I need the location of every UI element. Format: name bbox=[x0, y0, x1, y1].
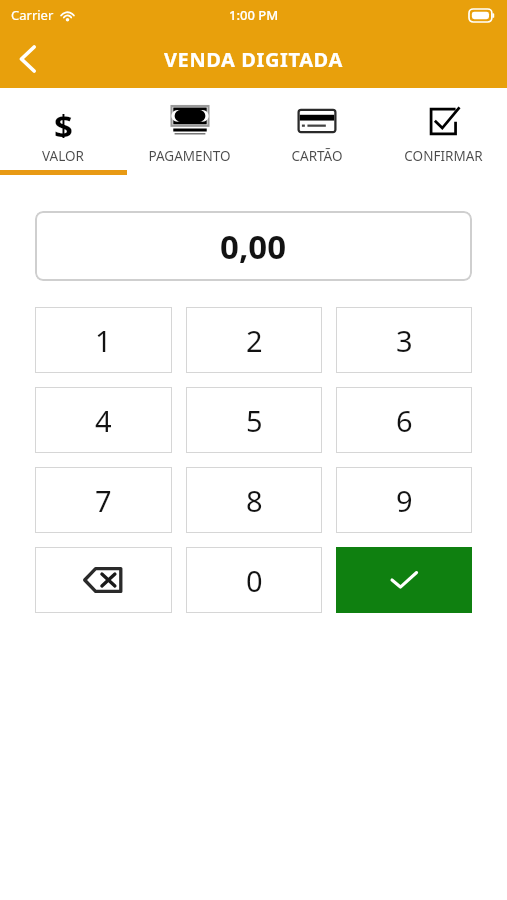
button[interactable]: 2 bbox=[186, 307, 322, 373]
staticText: 8 bbox=[246, 481, 263, 520]
staticText: VALOR bbox=[42, 147, 84, 165]
staticText: 6 bbox=[396, 401, 413, 440]
button[interactable]: 1 bbox=[35, 307, 172, 373]
button[interactable]: 6 bbox=[336, 387, 472, 453]
staticText: VENDA DIGITADA bbox=[164, 46, 343, 73]
button[interactable]: 4 bbox=[35, 387, 172, 453]
button[interactable]: PAGAMENTO bbox=[126, 88, 253, 175]
staticText: 1 bbox=[95, 321, 112, 360]
staticText: CONFIRMAR bbox=[404, 147, 483, 165]
staticText: CARTÃO bbox=[291, 147, 343, 165]
staticText: 0 bbox=[246, 561, 263, 600]
staticText: 5 bbox=[246, 401, 263, 440]
staticText: PAGAMENTO bbox=[148, 147, 231, 165]
button[interactable]: 0 bbox=[186, 547, 322, 613]
staticText: 0,00 bbox=[220, 224, 287, 269]
button[interactable]: Backspace bbox=[35, 547, 172, 613]
staticText: 2 bbox=[246, 321, 263, 360]
staticText: Carrier bbox=[11, 6, 54, 24]
button[interactable]: $ bbox=[0, 88, 126, 175]
button[interactable]: CONFIRMAR bbox=[380, 88, 507, 175]
button[interactable]: 3 bbox=[336, 307, 472, 373]
button[interactable]: Back bbox=[0, 31, 56, 87]
button[interactable]: Confirm bbox=[336, 547, 472, 613]
button[interactable]: 0,00 bbox=[35, 211, 472, 281]
staticText: 3 bbox=[396, 321, 413, 360]
button[interactable]: 9 bbox=[336, 467, 472, 533]
button[interactable]: 5 bbox=[186, 387, 322, 453]
button[interactable]: CARTÃO bbox=[253, 88, 380, 175]
staticText: $ bbox=[54, 104, 73, 138]
button[interactable]: 8 bbox=[186, 467, 322, 533]
staticText: 7 bbox=[95, 481, 112, 520]
button[interactable]: 7 bbox=[35, 467, 172, 533]
staticText: 9 bbox=[396, 481, 413, 520]
staticText: 1:00 PM bbox=[229, 6, 279, 24]
staticText: 4 bbox=[95, 401, 112, 440]
